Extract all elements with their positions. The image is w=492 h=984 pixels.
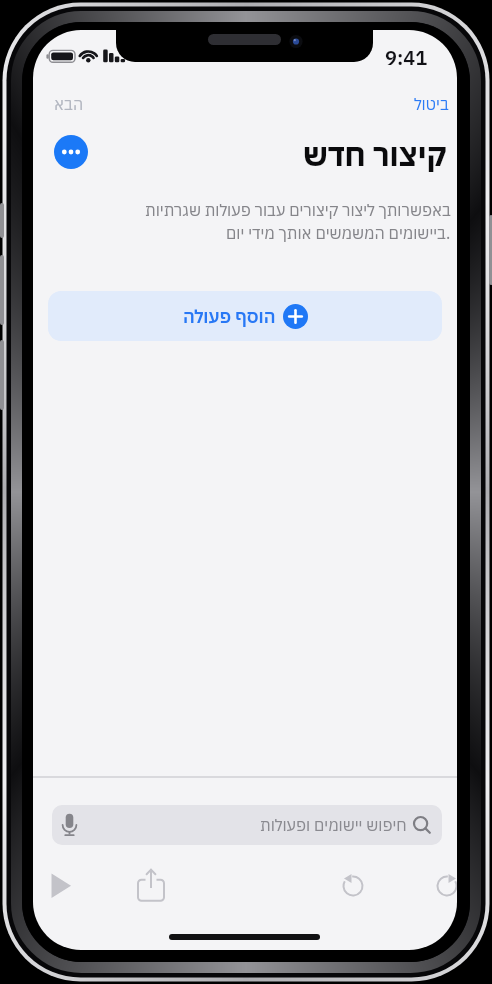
button[interactable]: הבא bbox=[54, 92, 84, 116]
staticText: חיפוש יישומים ופעולות bbox=[260, 815, 407, 836]
button[interactable] bbox=[435, 874, 457, 898]
button[interactable]: ביטול bbox=[414, 94, 449, 115]
button[interactable] bbox=[341, 874, 365, 898]
staticText: ביישומים המשמשים אותך מידי יום. bbox=[226, 223, 451, 244]
button[interactable]: הוסף פעולה bbox=[48, 291, 442, 341]
staticText: 9:41 bbox=[385, 44, 428, 68]
button[interactable] bbox=[54, 135, 88, 169]
button[interactable]: חיפוש יישומים ופעולות bbox=[52, 805, 442, 845]
staticText: הוסף פעולה bbox=[183, 305, 276, 328]
staticText: הבא bbox=[54, 94, 84, 115]
staticText: באפשרותך ליצור קיצורים עבור פעולות שגרתי… bbox=[145, 200, 451, 221]
staticText: קיצור חדש bbox=[303, 134, 447, 174]
button[interactable] bbox=[133, 866, 169, 904]
staticText: ביטול bbox=[414, 94, 449, 115]
button[interactable] bbox=[45, 868, 79, 904]
